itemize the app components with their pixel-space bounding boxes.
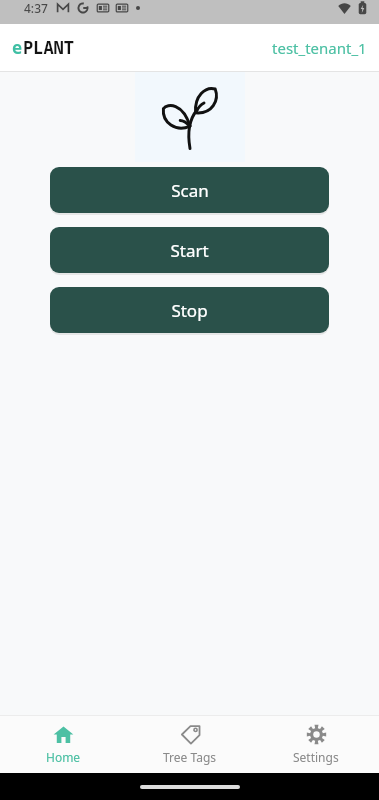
button[interactable]: Settings (253, 718, 379, 771)
staticText: Settings (293, 749, 339, 765)
staticText: Tree Tags (163, 749, 217, 765)
staticText: Scan (171, 179, 209, 202)
other: Home (53, 724, 74, 745)
other: Settings (306, 724, 327, 745)
other: Tree Tags (180, 724, 201, 745)
button[interactable]: Start (50, 227, 329, 273)
button[interactable]: Stop (50, 287, 329, 333)
button[interactable]: Scan (50, 167, 329, 213)
staticText: Home (46, 749, 81, 765)
staticText: test_tenant_1 (272, 38, 367, 58)
button[interactable]: Tree Tags (127, 718, 253, 771)
staticText: PLANT (23, 36, 74, 59)
staticText: e (12, 36, 23, 59)
button[interactable]: test_tenant_1 (272, 38, 367, 58)
staticText: 4:37 (24, 0, 48, 16)
staticText: Start (170, 239, 209, 262)
button[interactable]: Home (0, 718, 127, 771)
staticText: Stop (171, 299, 208, 322)
button[interactable]: e (12, 36, 74, 59)
